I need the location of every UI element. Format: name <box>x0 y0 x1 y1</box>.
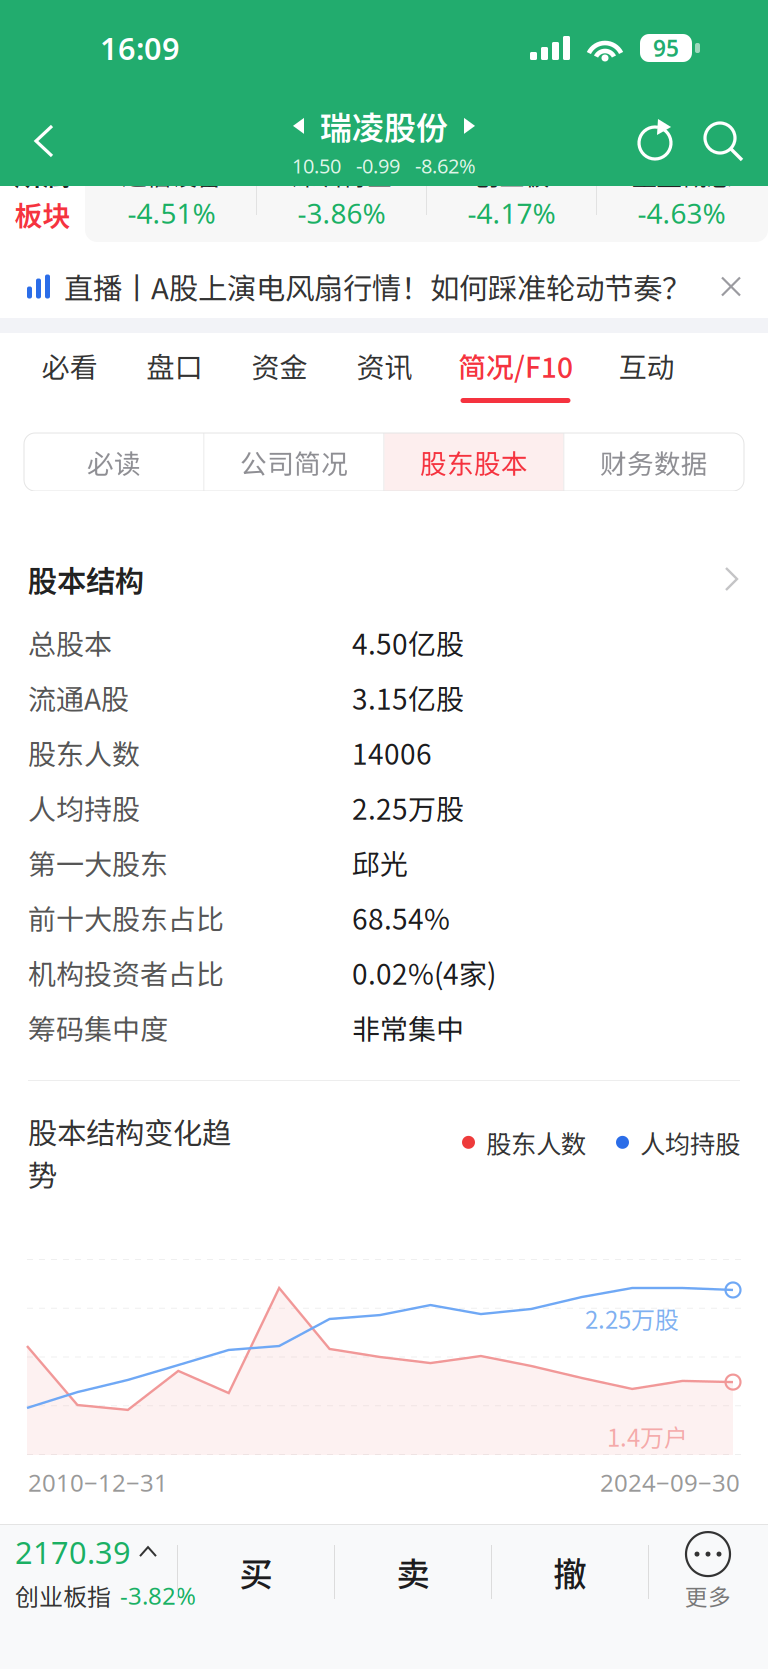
button[interactable]: 卖 <box>335 1525 491 1619</box>
button[interactable]: 股本结构 <box>0 551 768 607</box>
staticText: 互动 <box>618 345 674 386</box>
staticText: 资金 <box>251 345 307 386</box>
button[interactable]: 股东股本 <box>384 433 563 491</box>
staticText: 4.50亿股 <box>352 622 464 663</box>
button[interactable]: 创业板 <box>427 146 596 242</box>
staticText: 68.54% <box>352 897 450 938</box>
staticText: 前十大股东占比 <box>28 897 224 938</box>
staticText: 2024−09−30 <box>600 1466 740 1499</box>
staticText: 必看 <box>41 345 97 386</box>
staticText: 股本结构变化趋势 <box>28 1110 231 1195</box>
staticText: 1.4万户 <box>607 1419 688 1454</box>
button[interactable]: 撤 <box>492 1525 648 1619</box>
staticText: 盘口 <box>146 345 202 386</box>
staticText: 资讯 <box>356 345 412 386</box>
staticText: 股本结构 <box>28 558 144 600</box>
staticText: 卖 <box>396 1548 429 1596</box>
button[interactable]: 买 <box>178 1525 334 1619</box>
staticText: 筹码集中度 <box>28 1007 168 1048</box>
staticText: 人均持股 <box>28 787 140 828</box>
staticText: -4.63% <box>637 194 725 232</box>
staticText: 人均持股 <box>640 1124 740 1161</box>
staticText: 2.25万股 <box>585 1301 679 1336</box>
button[interactable]: 资金 <box>227 333 332 415</box>
staticText: 简况/F10 <box>458 345 573 386</box>
button[interactable]: Refresh <box>628 107 684 175</box>
button[interactable]: 必读 <box>24 433 203 491</box>
staticText: 撤 <box>553 1548 586 1596</box>
staticText: 通信设备 <box>121 156 221 193</box>
staticText: 更多 <box>685 1579 731 1612</box>
staticText: 总股本 <box>28 622 112 663</box>
staticText: 创业板 <box>474 156 549 193</box>
staticText: 14006 <box>352 732 432 773</box>
button[interactable]: 必看 <box>17 333 122 415</box>
staticText: 2170.39 <box>15 1531 131 1573</box>
button[interactable]: 2170.39 <box>1 1525 177 1619</box>
staticText: 必读 <box>87 443 141 481</box>
staticText: 深圳特区 <box>291 156 391 193</box>
button[interactable]: 更多 <box>649 1525 767 1619</box>
button[interactable]: 财务数据 <box>564 433 743 491</box>
staticText: 买 <box>239 1548 272 1596</box>
staticText: 95 <box>653 33 679 63</box>
button[interactable]: 重整概念 <box>597 146 766 242</box>
staticText: 直播丨A股上演电风扇行情！如何踩准轮动节奏？ <box>64 265 691 308</box>
staticText: 创业板指 <box>15 1578 111 1613</box>
staticText: 第一大股东 <box>28 842 168 883</box>
button[interactable]: 简况/F10 <box>437 333 594 415</box>
staticText: 股东人数 <box>486 1124 586 1161</box>
staticText: 2.25万股 <box>352 787 464 828</box>
staticText: 2010−12−31 <box>28 1466 168 1499</box>
staticText: 重整概念 <box>631 156 731 193</box>
button[interactable]: 通信设备 <box>87 146 256 242</box>
staticText: 流通A股 <box>28 677 129 718</box>
staticText: 板块 <box>14 194 70 234</box>
staticText: 股东股本 <box>420 443 528 481</box>
button[interactable]: 直播丨A股上演电风扇行情！如何踩准轮动节奏？ <box>0 255 768 318</box>
staticText: 公司简况 <box>240 443 348 481</box>
button[interactable]: 盘口 <box>122 333 227 415</box>
staticText: 0.02%(4家) <box>352 952 496 993</box>
staticText: 机构投资者占比 <box>28 952 224 993</box>
button[interactable]: Search <box>694 107 750 175</box>
staticText: -4.17% <box>467 194 555 232</box>
staticText: 非常集中 <box>352 1007 464 1048</box>
staticText: 3.15亿股 <box>352 677 464 718</box>
staticText: 财务数据 <box>600 443 708 481</box>
staticText: 邱光 <box>352 842 408 883</box>
staticText: -3.82% <box>120 1579 196 1612</box>
staticText: 16:09 <box>100 27 180 69</box>
staticText: 10.50 -0.99 -8.62% <box>292 152 476 179</box>
staticText: 股东人数 <box>28 732 140 773</box>
button[interactable]: 深圳特区 <box>257 146 426 242</box>
button[interactable]: 资讯 <box>332 333 437 415</box>
staticText: -4.51% <box>127 194 215 232</box>
button[interactable]: 互动 <box>594 333 699 415</box>
button[interactable]: Back <box>12 107 76 175</box>
staticText: 所属 <box>14 153 70 194</box>
button[interactable]: 公司简况 <box>204 433 383 491</box>
staticText: -3.86% <box>297 194 385 232</box>
staticText: 瑞凌股份 <box>320 103 448 149</box>
